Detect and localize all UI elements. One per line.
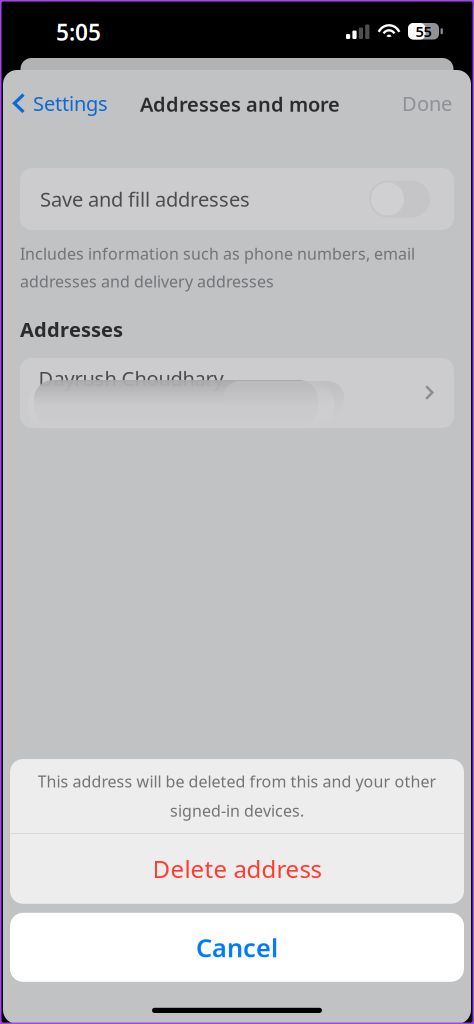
- button[interactable]: Done: [394, 83, 460, 124]
- staticText: Includes information such as phone numbe…: [20, 243, 415, 264]
- staticText: Settings: [33, 90, 108, 117]
- staticText: 55: [415, 21, 431, 41]
- staticText: signed-in devices.: [170, 800, 304, 821]
- button[interactable]: Dayrush Choudhary: [20, 358, 454, 428]
- staticText: Addresses and more: [140, 91, 340, 117]
- staticText: addresses and delivery addresses: [20, 271, 274, 292]
- staticText: Done: [402, 90, 452, 117]
- staticText: 5:05: [56, 17, 101, 47]
- staticText: Delete address: [152, 853, 321, 885]
- staticText: Cancel: [196, 930, 278, 964]
- staticText: Addresses: [20, 316, 123, 343]
- button[interactable]: Save and fill addresses: [20, 168, 454, 230]
- staticText: Save and fill addresses: [40, 186, 250, 212]
- button[interactable]: Delete address: [10, 834, 464, 904]
- staticText: Dayrush Choudhary: [38, 365, 223, 392]
- button[interactable]: Cancel: [10, 913, 464, 982]
- button[interactable]: Settings: [3, 83, 116, 124]
- staticText: This address will be deleted from this a…: [37, 771, 436, 792]
